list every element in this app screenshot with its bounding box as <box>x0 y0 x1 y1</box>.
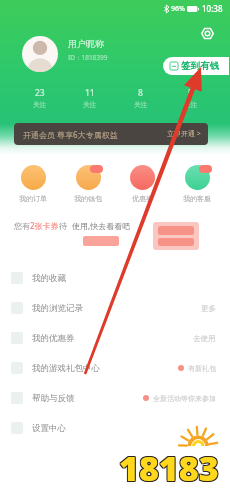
staticText: 有新礼包 <box>188 364 216 373</box>
staticText: 立即开通 > <box>167 129 201 139</box>
staticText: 去使用 <box>193 334 216 343</box>
staticText: 18183 <box>119 445 219 491</box>
staticText: 18183 <box>119 445 219 491</box>
staticText: 18183 <box>121 446 221 492</box>
button[interactable]: 我的浏览记录 <box>0 293 230 323</box>
staticText: 18183 <box>120 446 220 492</box>
staticText: 18183 <box>120 446 220 492</box>
staticText: 18183 <box>119 446 219 492</box>
button[interactable]: 帮助与反馈 <box>0 383 230 413</box>
button[interactable]: 8 <box>126 86 155 110</box>
staticText: 18183 <box>119 446 219 492</box>
button[interactable]: 我的收藏 <box>0 263 230 293</box>
staticText: 我的浏览记录 <box>32 303 83 314</box>
staticText: 23 <box>35 87 45 99</box>
staticText: 我的客服 <box>183 194 211 203</box>
staticText: 18183 <box>118 444 218 490</box>
staticText: 关注 <box>184 101 197 109</box>
button[interactable] <box>153 222 199 250</box>
staticText: 18183 <box>120 445 220 491</box>
button[interactable] <box>83 236 119 246</box>
staticText: 18183 <box>119 444 219 490</box>
staticText: 帮助与反馈 <box>32 393 75 404</box>
staticText: 优惠券 <box>132 194 153 203</box>
staticText: 我的优惠券 <box>32 333 75 344</box>
button[interactable]: 签到有钱 <box>163 57 229 75</box>
staticText: 18183 <box>117 444 217 490</box>
staticText: 设置中心 <box>32 423 66 434</box>
staticText: 18183 <box>119 447 219 493</box>
button[interactable]: 设置中心 <box>0 413 230 443</box>
staticText: 96% <box>171 4 185 14</box>
button[interactable]: 我的游戏礼包中心 <box>0 353 230 383</box>
staticText: 18183 <box>117 445 217 491</box>
staticText: 关注 <box>33 101 46 109</box>
button[interactable]: 我的钱包 <box>66 164 110 203</box>
staticText: 5 <box>188 87 193 99</box>
staticText: 18183 <box>118 445 218 491</box>
button[interactable]: 我的客服 <box>175 164 219 203</box>
staticText: 11 <box>85 87 95 99</box>
staticText: 18183 <box>120 447 220 493</box>
staticText: 18183 <box>118 445 218 491</box>
staticText: 待 <box>59 221 67 231</box>
staticText: 18183 <box>117 446 217 492</box>
button[interactable]: 5 <box>176 86 205 110</box>
staticText: 18183 <box>118 446 218 492</box>
staticText: ID：1818399 <box>68 53 108 62</box>
button[interactable]: 优惠券 <box>120 164 164 203</box>
button[interactable]: Settings <box>199 25 216 42</box>
staticText: 关注 <box>83 101 96 109</box>
staticText: 开通会员 尊享6大专属权益 <box>23 129 118 140</box>
button[interactable]: 23 <box>25 86 54 110</box>
staticText: 2张卡券 <box>30 220 59 231</box>
button[interactable]: Avatar <box>22 36 58 72</box>
staticText: 签到有钱 <box>181 60 219 72</box>
staticText: 我的游戏礼包中心 <box>32 363 100 374</box>
staticText: 您有 <box>14 221 30 231</box>
button[interactable]: 11 <box>75 86 104 110</box>
staticText: 18183 <box>121 444 221 490</box>
staticText: 更多 <box>201 304 216 313</box>
button[interactable]: 我的订单 <box>11 164 55 203</box>
staticText: 全新活动等你来参加 <box>153 394 216 403</box>
staticText: 18183 <box>120 444 220 490</box>
staticText: 使用,快去看看吧 <box>72 220 131 231</box>
button[interactable]: 您有 <box>14 220 131 231</box>
staticText: 8 <box>138 87 143 99</box>
staticText: 18183 <box>120 445 220 491</box>
button[interactable]: 我的优惠券 <box>0 323 230 353</box>
staticText: 关注 <box>134 101 147 109</box>
staticText: 18183 <box>121 445 221 491</box>
staticText: 18183 <box>118 444 218 490</box>
staticText: 10:38 <box>202 3 223 14</box>
staticText: 我的收藏 <box>32 273 66 284</box>
staticText: 18183 <box>118 443 218 489</box>
staticText: 18183 <box>118 447 218 493</box>
staticText: 用户昵称 <box>68 38 104 49</box>
staticText: 18183 <box>120 443 220 489</box>
staticText: 18183 <box>120 444 220 490</box>
staticText: 我的订单 <box>19 194 47 203</box>
staticText: 18183 <box>119 444 219 490</box>
staticText: 我的钱包 <box>74 194 102 203</box>
staticText: 18183 <box>119 443 219 489</box>
staticText: 18183 <box>118 446 218 492</box>
button[interactable]: 开通会员 尊享6大专属权益 <box>14 123 208 145</box>
